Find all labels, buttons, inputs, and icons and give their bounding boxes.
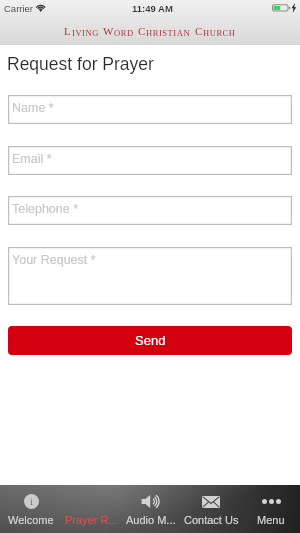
button[interactable]: Contact Us	[181, 485, 241, 533]
staticText: ORD	[114, 28, 134, 37]
button[interactable]: Audio Messages	[121, 485, 181, 533]
button[interactable]: Welcome	[1, 485, 61, 533]
button[interactable]: Your Request *	[8, 247, 292, 305]
staticText: L	[64, 25, 72, 37]
staticText: Welcome	[8, 514, 54, 526]
staticText: W	[103, 25, 114, 37]
staticText: Name *	[12, 101, 54, 115]
staticText: HURCH	[203, 28, 236, 37]
staticText: C	[195, 25, 203, 37]
staticText: Request for Prayer	[7, 54, 154, 74]
staticText: 11:49 AM	[132, 3, 173, 14]
staticText: i	[30, 496, 33, 507]
staticText: Carrier	[4, 3, 34, 14]
staticText: Send	[135, 333, 166, 348]
staticText: Prayer R...	[65, 514, 118, 526]
button[interactable]: Telephone *	[8, 196, 292, 225]
button[interactable]: Send	[8, 326, 292, 355]
staticText: C	[138, 25, 146, 37]
button[interactable]: Menu	[241, 485, 300, 533]
button[interactable]: Prayer Request	[61, 485, 121, 533]
staticText: Email *	[12, 152, 52, 166]
button[interactable]: Name *	[8, 95, 292, 124]
staticText: Audio M...	[126, 514, 176, 526]
staticText: Contact Us	[184, 514, 239, 526]
staticText: Your Request *	[12, 253, 96, 267]
staticText: Menu	[257, 514, 285, 526]
button[interactable]: Email *	[8, 146, 292, 175]
staticText: HRISTIAN	[146, 28, 191, 37]
staticText: Telephone *	[12, 202, 79, 216]
staticText: IVING	[72, 28, 99, 37]
